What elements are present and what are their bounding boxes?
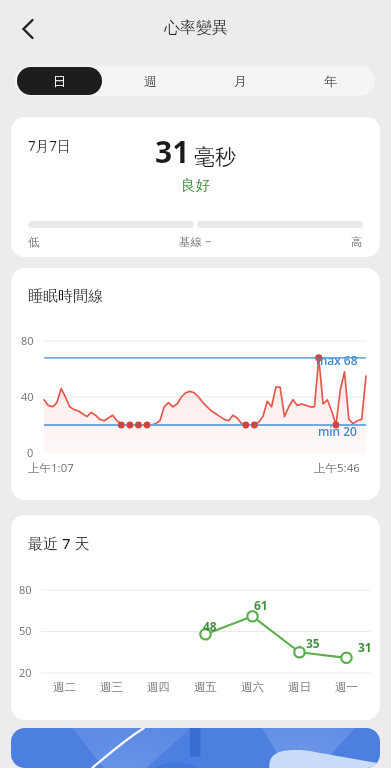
- staticText: 年: [324, 73, 337, 89]
- staticText: 睡眠時間線: [28, 287, 103, 306]
- button[interactable]: 年: [285, 66, 375, 96]
- staticText: 日: [53, 73, 66, 89]
- button[interactable]: 週: [105, 66, 195, 96]
- button[interactable]: 月: [195, 66, 285, 96]
- staticText: 50: [19, 623, 32, 638]
- staticText: 週六: [241, 680, 264, 694]
- staticText: 80: [21, 333, 34, 348]
- staticText: 週二: [53, 680, 76, 694]
- staticText: 20: [19, 665, 32, 680]
- staticText: 週三: [100, 680, 123, 694]
- staticText: 上午5:46: [314, 460, 360, 476]
- staticText: 上午1:07: [28, 460, 74, 476]
- staticText: 61: [254, 597, 268, 613]
- staticText: 週一: [335, 680, 358, 694]
- staticText: 基線 −: [179, 234, 212, 250]
- staticText: 最近 7 天: [28, 533, 90, 553]
- staticText: 心率變異: [164, 18, 228, 38]
- staticText: 良好: [181, 176, 210, 194]
- staticText: 40: [21, 389, 34, 404]
- staticText: 31: [155, 131, 190, 172]
- staticText: 週: [144, 73, 157, 89]
- button[interactable]: 7月7日: [11, 117, 380, 257]
- staticText: 週五: [194, 680, 217, 694]
- button[interactable]: 睡眠時間線: [11, 268, 380, 500]
- staticText: 48: [203, 618, 217, 634]
- staticText: 35: [306, 635, 320, 651]
- staticText: 0: [27, 445, 34, 460]
- button[interactable]: 日: [17, 67, 102, 95]
- staticText: max 68: [316, 352, 358, 368]
- staticText: 80: [19, 582, 32, 597]
- button[interactable]: [11, 728, 380, 768]
- staticText: 月: [234, 73, 247, 89]
- staticText: 毫秒: [194, 144, 236, 170]
- staticText: min 20: [318, 423, 357, 439]
- staticText: 高: [351, 235, 363, 249]
- button[interactable]: Back: [6, 7, 50, 51]
- staticText: 週四: [147, 680, 170, 694]
- staticText: 31: [358, 639, 372, 655]
- staticText: 7月7日: [28, 137, 71, 155]
- staticText: 低: [28, 235, 40, 249]
- button[interactable]: 最近 7 天: [11, 515, 380, 720]
- staticText: 週日: [288, 680, 311, 694]
